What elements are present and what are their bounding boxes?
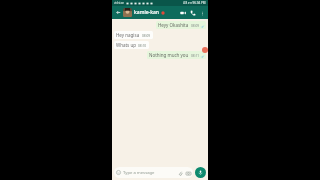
- button[interactable]: kamie-kan: [134, 9, 178, 16]
- staticText: Nothing much you: [149, 52, 189, 58]
- button[interactable]: Nothing much you: [147, 51, 206, 59]
- button[interactable]: Whats up: [114, 41, 149, 49]
- staticText: 4 8 ▾ ▾ 96.94 PM: [183, 1, 206, 5]
- button[interactable]: Back: [114, 8, 123, 17]
- staticText: Heyy Okashita: [158, 22, 189, 28]
- button[interactable]: Type a message: [114, 167, 193, 178]
- button[interactable]: Video call: [178, 8, 188, 18]
- button[interactable]: Heyy Okashita: [156, 21, 206, 29]
- staticText: 08:11: [191, 54, 200, 58]
- button[interactable]: Attach: [177, 170, 183, 176]
- staticText: 08:09: [191, 24, 200, 28]
- button[interactable]: Hey nagisa: [114, 31, 153, 39]
- staticText: Type a message: [123, 170, 155, 176]
- staticText: kamie-kan: [134, 9, 160, 16]
- button[interactable]: Profile photo: [123, 8, 132, 17]
- staticText: 08:09: [142, 34, 151, 38]
- button[interactable]: Camera: [185, 170, 191, 176]
- staticText: 08:10: [138, 44, 147, 48]
- staticText: Whats up: [116, 42, 136, 48]
- button[interactable]: Reaction: [202, 47, 208, 53]
- button[interactable]: Voice call: [188, 8, 198, 18]
- button[interactable]: More options: [198, 9, 206, 17]
- button[interactable]: Send voice message: [195, 167, 206, 178]
- staticText: vidstan: [114, 1, 125, 5]
- staticText: Hey nagisa: [116, 32, 140, 38]
